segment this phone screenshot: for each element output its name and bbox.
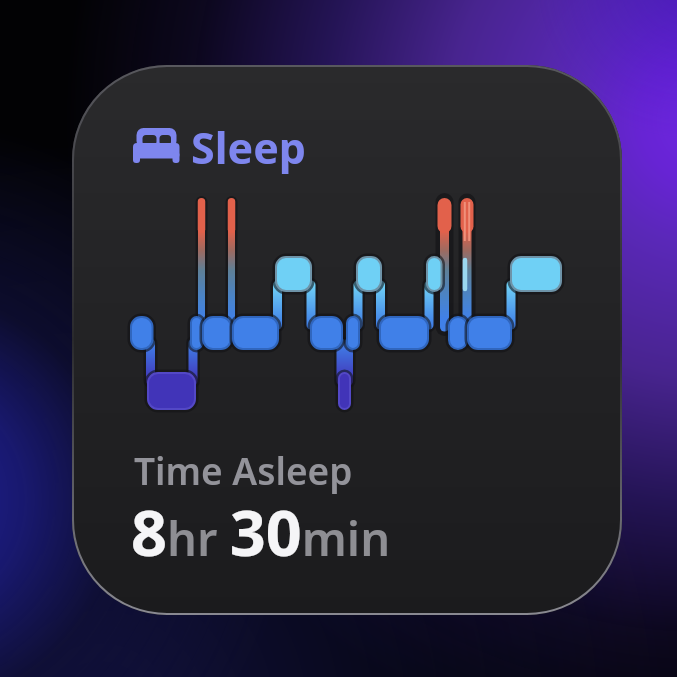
staticText: Time Asleep (134, 445, 353, 495)
staticText: 8hr 30min (131, 489, 391, 575)
button[interactable] (72, 65, 622, 615)
staticText: Sleep (191, 118, 307, 177)
